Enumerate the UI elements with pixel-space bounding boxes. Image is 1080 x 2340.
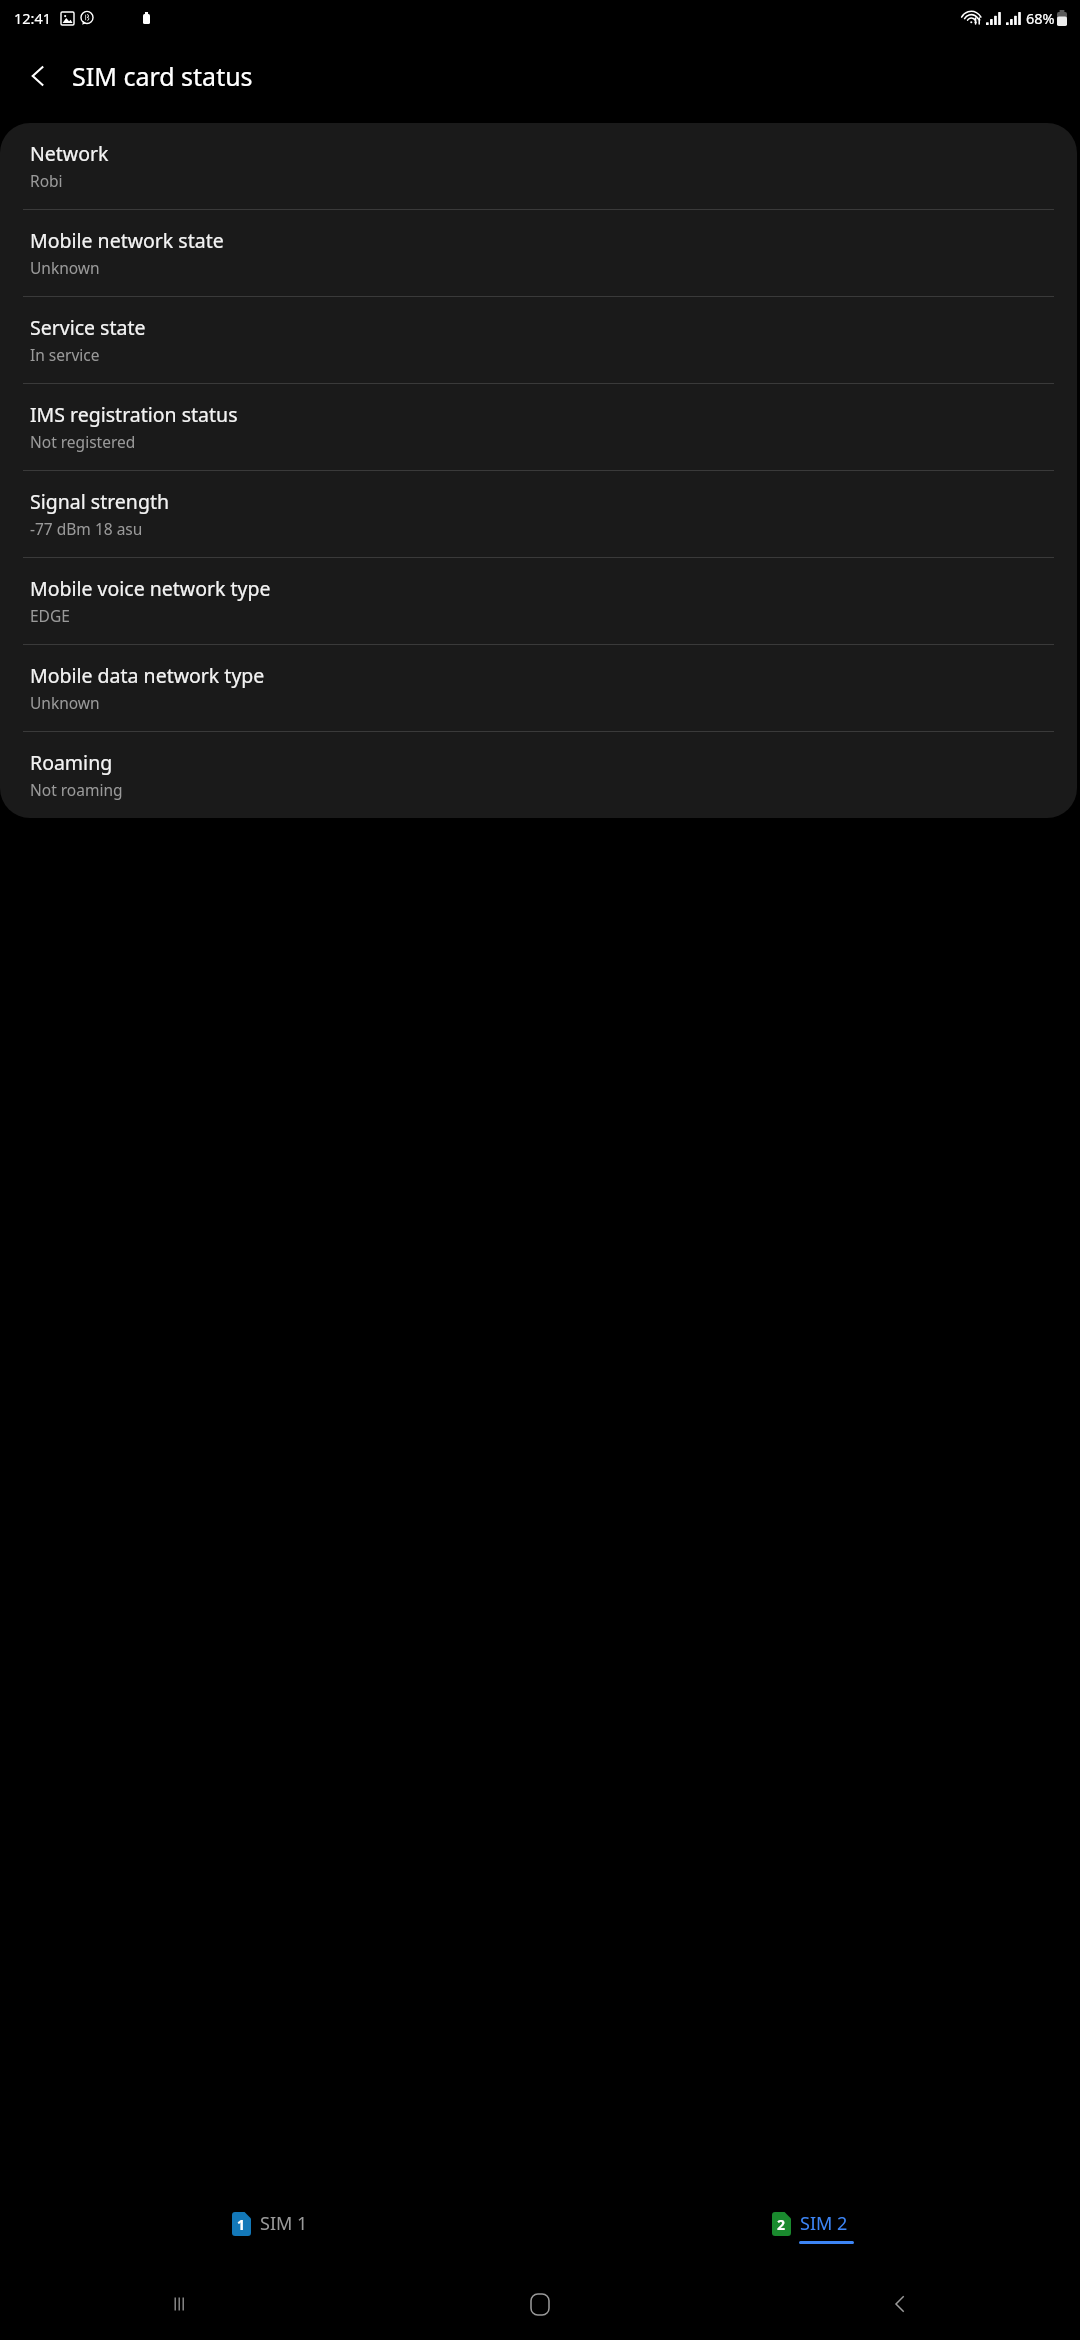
staticText: 12:41 xyxy=(14,8,52,28)
staticText: Not registered xyxy=(30,431,136,452)
button[interactable]: Network xyxy=(0,123,1077,209)
button[interactable]: Mobile network state xyxy=(0,210,1077,296)
button[interactable]: 2 xyxy=(754,2207,866,2248)
button[interactable]: Mobile voice network type xyxy=(0,558,1077,644)
staticText: Robi xyxy=(30,170,63,191)
staticText: In service xyxy=(30,344,100,365)
button[interactable]: Signal strength xyxy=(0,471,1077,557)
button[interactable]: Back xyxy=(720,2276,1080,2332)
button[interactable]: IMS registration status xyxy=(0,384,1077,470)
button[interactable]: Mobile data network type xyxy=(0,645,1077,731)
staticText: Unknown xyxy=(30,692,100,713)
staticText: Mobile data network type xyxy=(30,662,265,689)
staticText: Not roaming xyxy=(30,779,123,800)
staticText: Service state xyxy=(30,314,146,341)
staticText: Roaming xyxy=(30,749,113,776)
staticText: 1 xyxy=(237,2215,246,2234)
staticText: Unknown xyxy=(30,257,100,278)
button[interactable]: Recent apps xyxy=(0,2276,360,2332)
staticText: IMS registration status xyxy=(30,401,238,428)
button[interactable]: Roaming xyxy=(0,732,1077,818)
staticText: 2 xyxy=(777,2215,786,2234)
button[interactable]: Home xyxy=(360,2276,720,2332)
staticText: Signal strength xyxy=(30,488,169,515)
staticText: SIM 2 xyxy=(800,2211,848,2236)
button[interactable]: Service state xyxy=(0,297,1077,383)
staticText: 68% xyxy=(1026,8,1055,28)
button[interactable]: Back xyxy=(12,50,64,102)
button[interactable]: 1 xyxy=(214,2207,326,2248)
staticText: -77 dBm 18 asu xyxy=(30,518,143,539)
staticText: Mobile network state xyxy=(30,227,224,254)
staticText: Mobile voice network type xyxy=(30,575,271,602)
staticText: Network xyxy=(30,140,109,167)
staticText: EDGE xyxy=(30,605,70,626)
staticText: SIM card status xyxy=(72,59,253,93)
staticText: SIM 1 xyxy=(260,2211,308,2236)
